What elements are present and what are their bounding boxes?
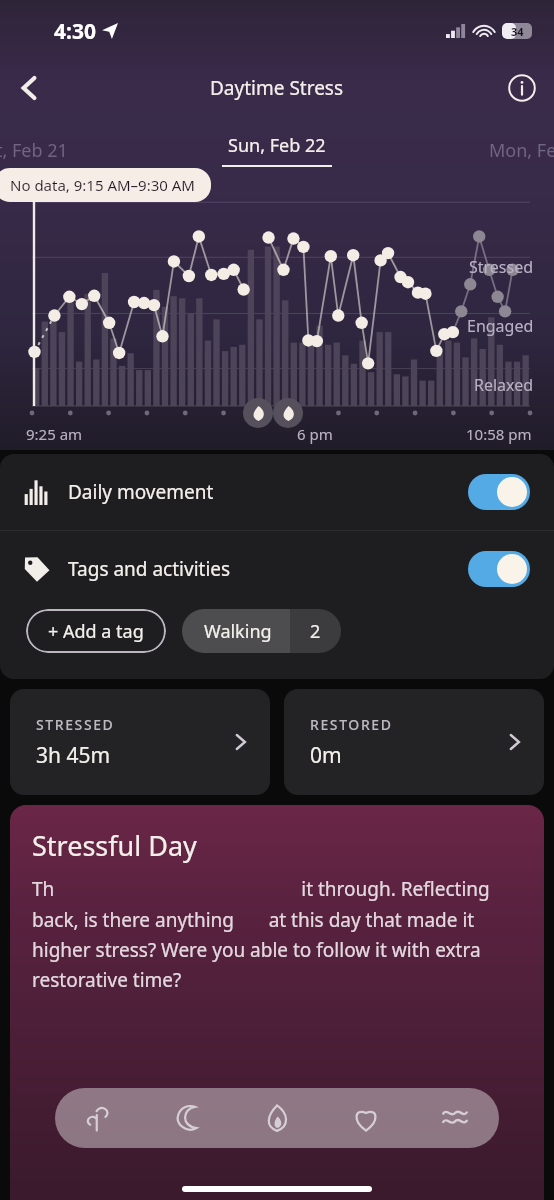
staticText: Relaxed	[474, 374, 534, 396]
button[interactable]: t, Feb 21	[0, 138, 68, 163]
staticText: Engaged	[467, 315, 534, 337]
staticText: Daytime Stress	[210, 75, 344, 101]
button[interactable]: RESTORED	[284, 689, 544, 795]
staticText: 4:30	[54, 17, 96, 46]
staticText: 6 pm	[297, 424, 333, 444]
staticText: 3h 45m	[36, 741, 111, 770]
staticText: 9:25 am	[26, 424, 83, 444]
button[interactable]: + Add a tag	[26, 609, 166, 653]
button[interactable]: Stress	[232, 1088, 321, 1148]
button[interactable]: Workout	[243, 398, 273, 428]
button[interactable]: Toggle	[468, 474, 530, 510]
button[interactable]: Stressful Day	[10, 805, 544, 1200]
button[interactable]: Info	[500, 66, 544, 110]
button[interactable]: Workout	[273, 398, 303, 428]
staticText: RESTORED	[310, 715, 393, 734]
staticText: Th it through. Reflecting back, is there…	[32, 876, 526, 992]
button[interactable]: Heart	[321, 1088, 410, 1148]
staticText: Stressful Day	[32, 827, 197, 864]
staticText: 34	[511, 24, 524, 39]
staticText: STRESSED	[36, 715, 115, 734]
button[interactable]: Tags and activities	[0, 531, 554, 607]
button[interactable]: Daily movement	[0, 454, 554, 530]
button[interactable]: Toggle	[468, 551, 530, 587]
button[interactable]: Body	[55, 1088, 143, 1148]
staticText: 2	[310, 619, 321, 644]
button[interactable]: Back	[6, 64, 54, 112]
button[interactable]: Walking	[182, 609, 341, 653]
staticText: + Add a tag	[48, 619, 144, 644]
button[interactable]: Sleep	[143, 1088, 232, 1148]
button[interactable]: Mon, Feb	[489, 138, 554, 163]
staticText: Daily movement	[68, 479, 214, 505]
button[interactable]: Sun, Feb 22	[222, 133, 332, 167]
staticText: Sun, Feb 22	[228, 133, 326, 158]
button[interactable]: Trends	[410, 1088, 499, 1148]
staticText: No data, 9:15 AM–9:30 AM	[10, 175, 195, 195]
button[interactable]: No data, 9:15 AM–9:30 AM	[10, 175, 195, 195]
staticText: 10:58 pm	[466, 424, 532, 444]
button[interactable]: STRESSED	[10, 689, 270, 795]
staticText: Stressed	[469, 256, 534, 278]
staticText: 0m	[310, 741, 342, 770]
staticText: Tags and activities	[68, 556, 231, 582]
staticText: Walking	[204, 619, 272, 644]
